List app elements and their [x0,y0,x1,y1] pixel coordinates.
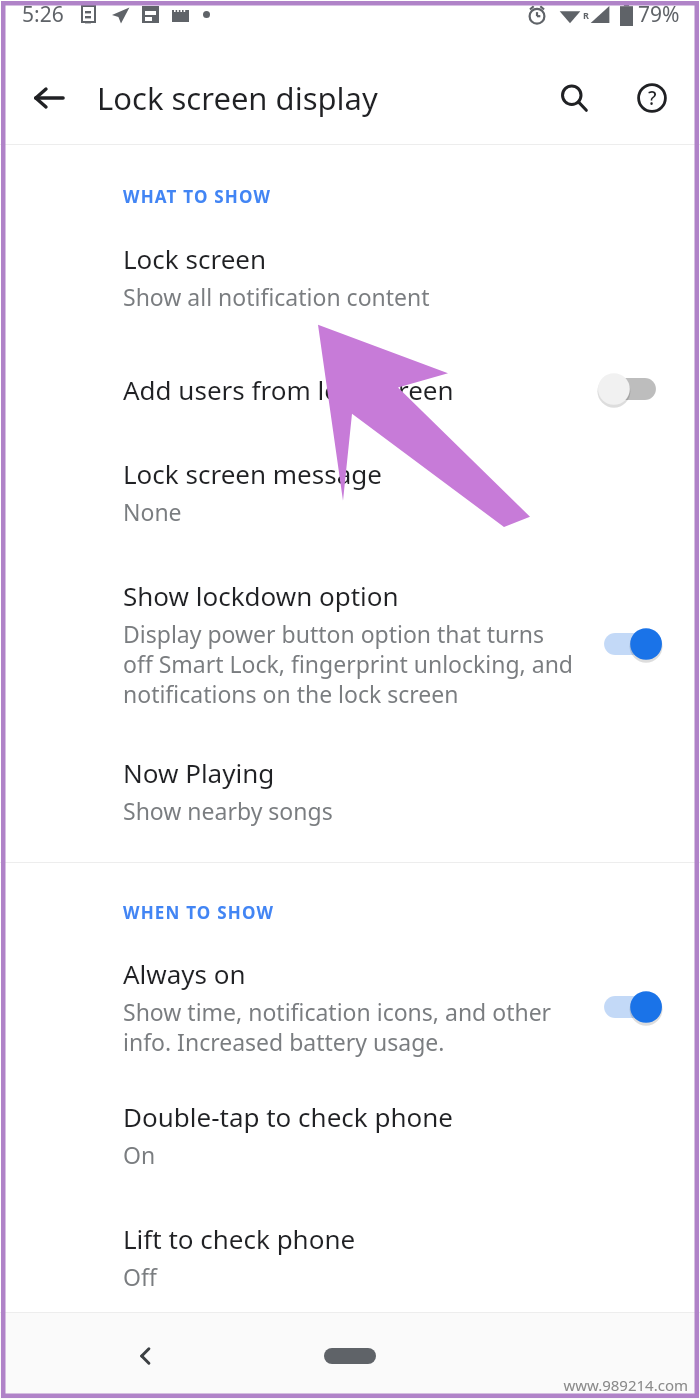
staticText: Lock screen display [97,77,378,119]
button[interactable]: Toggle on [594,621,666,667]
staticText: Display power button option that turns o… [123,618,578,709]
staticText: WHAT TO SHOW [123,185,272,208]
button[interactable]: Lift to check phone [0,1221,700,1292]
staticText: Show all notification content [123,281,430,312]
staticText: Show nearby songs [123,795,333,826]
button[interactable]: Double-tap to check phone [0,1099,700,1170]
button[interactable]: Search [548,72,600,124]
staticText: None [123,496,182,527]
staticText: Lift to check phone [123,1221,356,1256]
staticText: ? [648,85,657,111]
staticText: Show lockdown option [123,578,399,613]
button[interactable]: Toggle off [594,366,666,412]
staticText: Lock screen [123,241,267,276]
staticText: Lock screen message [123,456,382,491]
staticText: R [583,9,589,21]
staticText: Double-tap to check phone [123,1099,453,1134]
button[interactable]: Back [22,71,76,125]
staticText: Off [123,1261,157,1292]
staticText: Always on [123,956,246,991]
button[interactable]: Home [324,1348,376,1364]
button[interactable]: Add users from lock screen [0,366,700,412]
staticText: Now Playing [123,755,275,790]
staticText: Add users from lock screen [123,372,454,407]
staticText: On [123,1139,156,1170]
button[interactable]: Lock screen [0,241,700,312]
button[interactable]: Lock screen message [0,456,700,527]
button[interactable]: Help [626,72,678,124]
staticText: 5:26 [22,0,64,29]
button[interactable]: Back [120,1330,172,1382]
staticText: www.989214.com [563,1375,688,1395]
staticText: 79% [638,0,680,29]
button[interactable]: Show lockdown option [0,578,700,709]
button[interactable]: Toggle on [594,984,666,1030]
staticText: WHEN TO SHOW [123,901,275,924]
staticText: Show time, notification icons, and other… [123,996,578,1057]
button[interactable]: Always on [0,956,700,1057]
button[interactable]: Now Playing [0,755,700,826]
